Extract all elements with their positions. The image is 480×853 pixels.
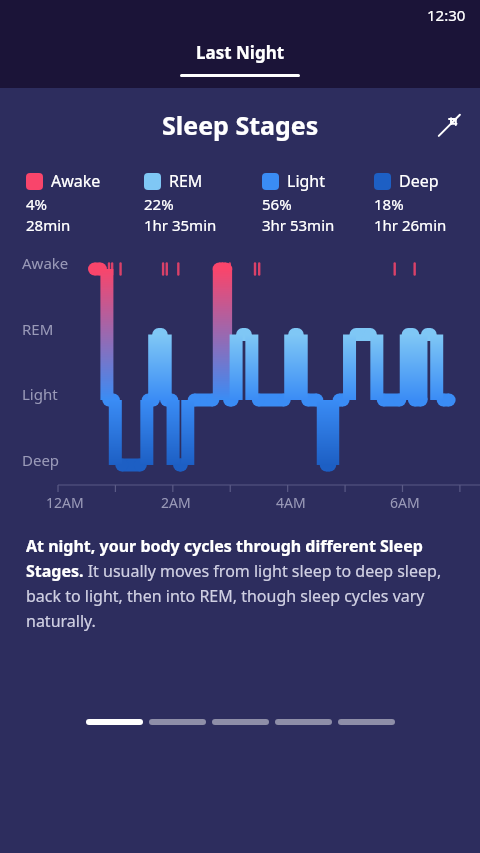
staticText: 12AM bbox=[46, 493, 84, 512]
staticText: 6AM bbox=[390, 493, 420, 512]
staticText: 1hr 26min bbox=[374, 215, 447, 235]
staticText: 2AM bbox=[161, 493, 191, 512]
staticText: REM bbox=[22, 319, 54, 339]
button[interactable] bbox=[86, 719, 143, 725]
button[interactable] bbox=[149, 719, 206, 725]
staticText: 22% bbox=[144, 194, 174, 214]
staticText: 4AM bbox=[276, 493, 306, 512]
button[interactable] bbox=[212, 719, 269, 725]
staticText: Deep bbox=[22, 450, 60, 470]
staticText: 4% bbox=[26, 194, 48, 214]
button[interactable] bbox=[338, 719, 395, 725]
button[interactable]: Last Night bbox=[180, 41, 300, 77]
staticText: 1hr 35min bbox=[144, 215, 217, 235]
staticText: Awake bbox=[22, 253, 69, 273]
staticText: REM bbox=[169, 170, 203, 192]
staticText: Last Night bbox=[196, 41, 285, 64]
staticText: 3hr 53min bbox=[262, 215, 335, 235]
staticText: 12:30 bbox=[427, 5, 466, 25]
staticText: 18% bbox=[374, 194, 404, 214]
button[interactable]: Collapse chart bbox=[432, 108, 466, 142]
button[interactable] bbox=[275, 719, 332, 725]
staticText: Sleep Stages bbox=[162, 108, 319, 142]
staticText: Awake bbox=[51, 170, 101, 192]
staticText: Deep bbox=[399, 170, 439, 192]
staticText: 28min bbox=[26, 215, 71, 235]
staticText: Light bbox=[22, 384, 58, 404]
staticText: 56% bbox=[262, 194, 292, 214]
staticText: At night, your body cycles through diffe… bbox=[26, 535, 454, 631]
staticText: Light bbox=[287, 170, 326, 192]
